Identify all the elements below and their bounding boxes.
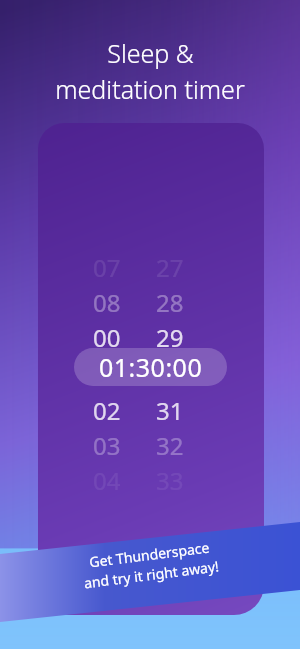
staticText: meditation timer — [55, 72, 245, 106]
staticText: 29 — [156, 321, 184, 347]
button[interactable]: 04 — [75, 464, 228, 490]
staticText: Get Thunderspace — [88, 537, 210, 571]
staticText: 01:30:00 — [99, 350, 203, 384]
button[interactable]: 08 — [75, 286, 228, 312]
staticText: 02 — [93, 394, 121, 420]
staticText: 04 — [93, 464, 121, 490]
staticText: 08 — [93, 286, 121, 312]
staticText: 03 — [93, 429, 121, 455]
button[interactable]: 01:30:00 — [74, 348, 227, 386]
staticText: and try it right away! — [83, 556, 220, 592]
button[interactable]: 02 — [75, 394, 228, 420]
staticText: 33 — [156, 464, 184, 490]
button[interactable]: 00 — [75, 321, 228, 347]
staticText: 31 — [156, 394, 184, 420]
staticText: 07 — [93, 251, 121, 277]
button[interactable]: 07 — [75, 251, 228, 277]
staticText: Sleep & — [107, 36, 194, 70]
staticText: 27 — [156, 251, 184, 277]
button[interactable]: 03 — [75, 429, 228, 455]
button[interactable]: Get Thunderspace and try it right away — [0, 538, 300, 590]
staticText: 32 — [156, 429, 184, 455]
staticText: 28 — [156, 286, 184, 312]
staticText: 00 — [93, 321, 121, 347]
